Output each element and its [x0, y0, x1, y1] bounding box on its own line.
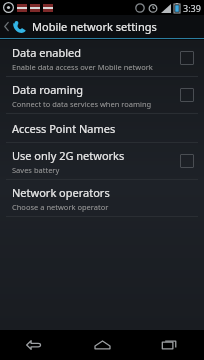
staticText: Connect to data services when roaming — [12, 99, 152, 109]
staticText: Mobile network settings — [32, 19, 157, 34]
button[interactable]: Back — [0, 330, 68, 360]
button[interactable]: Data enabled — [0, 40, 204, 76]
button[interactable]: Recent apps — [136, 330, 204, 360]
other: Data enabled checkbox — [180, 51, 194, 65]
other: Data roaming checkbox — [180, 88, 194, 102]
staticText: Data roaming — [12, 82, 84, 97]
staticText: 3:39 — [183, 2, 201, 14]
staticText: Use only 2G networks — [12, 148, 125, 163]
staticText: Enable data access over Mobile network — [12, 62, 153, 72]
button[interactable]: Home — [68, 330, 136, 360]
staticText: Data enabled — [12, 45, 81, 60]
staticText: Access Point Names — [12, 121, 116, 136]
staticText: Network operators — [12, 185, 110, 200]
other: Use only 2G networks checkbox — [180, 154, 194, 168]
button[interactable]: Network operators — [0, 180, 204, 216]
staticText: Choose a network operator — [12, 202, 109, 212]
button[interactable]: Use only 2G networks — [0, 143, 204, 179]
button[interactable]: Mobile network settings — [0, 15, 204, 38]
button[interactable]: Access Point Names — [0, 114, 204, 142]
staticText: Saves battery — [12, 165, 60, 175]
button[interactable]: Data roaming — [0, 77, 204, 113]
